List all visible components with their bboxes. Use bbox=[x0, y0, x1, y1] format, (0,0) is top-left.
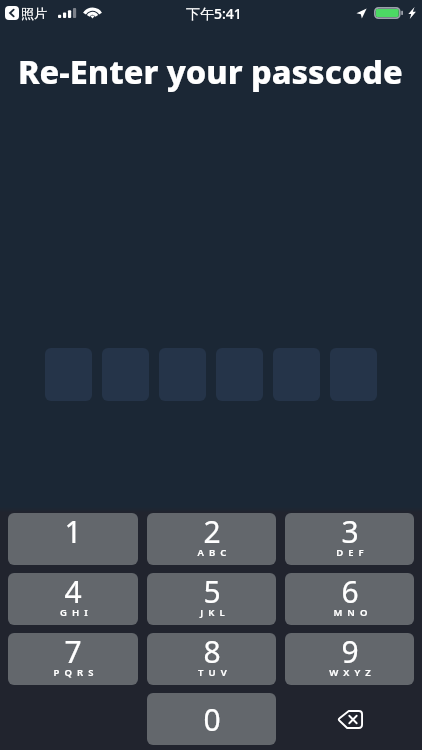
button[interactable]: 0 bbox=[147, 693, 276, 745]
staticText: PQRS bbox=[53, 666, 99, 679]
button[interactable]: 7 bbox=[8, 633, 138, 685]
button[interactable]: Delete bbox=[285, 693, 414, 745]
staticText: 下午5:41 bbox=[186, 4, 242, 23]
button[interactable]: 1 bbox=[8, 513, 138, 565]
button[interactable]: 4 bbox=[8, 573, 138, 625]
button[interactable]: 照片 bbox=[0, 5, 101, 21]
staticText: 7 bbox=[64, 633, 82, 672]
staticText: 1 bbox=[64, 513, 82, 552]
button[interactable]: 5 bbox=[147, 573, 276, 625]
staticText: WXYZ bbox=[329, 666, 376, 679]
button[interactable]: 2 bbox=[147, 513, 276, 565]
button[interactable]: 6 bbox=[285, 573, 414, 625]
button[interactable]: 9 bbox=[285, 633, 414, 685]
staticText: DEF bbox=[336, 546, 369, 559]
staticText: TUV bbox=[198, 666, 232, 679]
button[interactable]: 3 bbox=[285, 513, 414, 565]
staticText: 9 bbox=[341, 633, 359, 672]
staticText: 照片 bbox=[21, 5, 47, 21]
staticText: GHI bbox=[60, 606, 93, 619]
staticText: Re-Enter your passcode bbox=[18, 49, 422, 93]
button[interactable]: 8 bbox=[147, 633, 276, 685]
staticText: MNO bbox=[333, 606, 373, 619]
staticText: 5 bbox=[203, 573, 221, 612]
staticText: 2 bbox=[203, 513, 221, 552]
staticText: JKL bbox=[200, 606, 230, 619]
staticText: 6 bbox=[341, 573, 359, 612]
staticText: ABC bbox=[197, 546, 232, 559]
staticText: 0 bbox=[203, 699, 221, 740]
staticText: 3 bbox=[341, 513, 359, 552]
staticText: 4 bbox=[64, 573, 82, 612]
staticText: 8 bbox=[203, 633, 221, 672]
